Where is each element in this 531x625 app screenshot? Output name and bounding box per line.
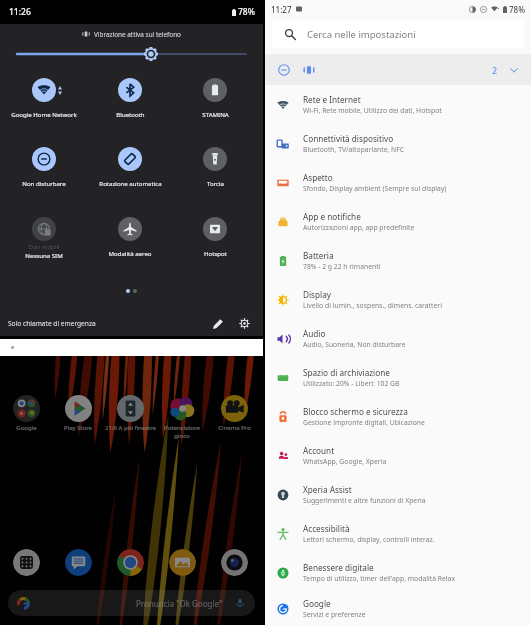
button[interactable]: Torcia: [172, 147, 258, 187]
staticText: Accessibilità: [303, 523, 350, 534]
button[interactable]: Dati mobili: [1, 217, 87, 259]
staticText: Google Home Network: [11, 110, 77, 118]
staticText: Cinema Pro: [218, 424, 251, 432]
button[interactable]: Blocco schermo e sicurezza: [265, 397, 531, 436]
staticText: Vibrazione attiva sul telefono: [94, 30, 181, 39]
button[interactable]: Messaggi: [65, 549, 92, 576]
staticText: 2: [492, 64, 498, 76]
button[interactable]: Spazio di archiviazione: [265, 358, 531, 397]
staticText: Servizi e preferenze: [303, 610, 366, 619]
button[interactable]: Cinema Pro: [208, 395, 260, 432]
button[interactable]: Impostazioni: [235, 314, 253, 332]
button[interactable]: Rete e Internet: [265, 85, 531, 124]
staticText: STAMINA: [202, 110, 229, 118]
button[interactable]: Xperia Assist: [265, 475, 531, 514]
button[interactable]: Pronuncia "Ok Google": [8, 590, 255, 616]
button[interactable]: Benessere digitale: [265, 553, 531, 592]
staticText: 11:26: [9, 6, 31, 18]
button[interactable]: Fotocamera: [221, 549, 248, 576]
staticText: App e notifiche: [303, 211, 361, 222]
staticText: Torcia: [207, 179, 224, 187]
staticText: Cerca nelle impostazioni: [307, 28, 416, 41]
button[interactable]: Galleria: [169, 549, 196, 576]
staticText: Wi-Fi, Rete mobile, Utilizzo dei dati, H…: [303, 106, 442, 115]
staticText: Display: [303, 289, 331, 300]
button[interactable]: STAMINA: [172, 78, 258, 118]
staticText: Autorizzazioni app, app predefinite: [303, 223, 415, 232]
button[interactable]: Batteria: [265, 241, 531, 280]
staticText: Xperia Assist: [303, 484, 352, 495]
button[interactable]: Chrome: [117, 549, 144, 576]
staticText: Google: [16, 424, 37, 432]
button[interactable]: Modifica: [209, 314, 227, 332]
button[interactable]: App e notifiche: [265, 202, 531, 241]
button[interactable]: Display: [265, 280, 531, 319]
staticText: Blocco schermo e sicurezza: [303, 406, 408, 417]
staticText: Tempo di utilizzo, timer dell'app, modal…: [303, 574, 455, 583]
staticText: Batteria: [303, 250, 334, 261]
button[interactable]: Modalità aereo: [87, 217, 173, 257]
button[interactable]: Google Home Network: [1, 78, 87, 118]
staticText: 78% - 2 g 22 h rimanenti: [303, 262, 381, 271]
staticText: Solo chiamate di emergenza: [8, 319, 96, 328]
staticText: Spazio di archiviazione: [303, 367, 390, 378]
staticText: 78%: [238, 6, 255, 18]
button[interactable]: Accessibilità: [265, 514, 531, 553]
staticText: Benessere digitale: [303, 562, 374, 573]
button[interactable]: Non disturbare: [1, 147, 87, 187]
staticText: Rotazione automatica: [99, 179, 162, 187]
staticText: Non disturbare: [22, 179, 66, 187]
staticText: Play Store: [64, 424, 92, 432]
staticText: Connettività dispositivo: [303, 133, 394, 144]
button[interactable]: Audio: [265, 319, 531, 358]
button[interactable]: Telefono: [13, 549, 40, 576]
staticText: Utilizzato: 20% - Liberi: 102 GB: [303, 379, 400, 388]
button[interactable]: 21:9 A più finestre: [104, 395, 156, 432]
button[interactable]: Potenziatore gioco: [156, 395, 208, 439]
staticText: Bluetooth: [116, 110, 145, 118]
staticText: Sfondo, Display ambient (Sempre sul disp…: [303, 184, 447, 193]
staticText: Lettori schermo, display, controlli inte…: [303, 535, 435, 544]
staticText: Aspetto: [303, 172, 333, 183]
staticText: Dati mobili: [28, 242, 60, 250]
staticText: Suggerimenti e altre funzioni di Xperia: [303, 496, 426, 505]
button[interactable]: Rotazione automatica: [87, 147, 173, 187]
button[interactable]: Solo chiamate di emergenza: [0, 310, 263, 336]
staticText: Pronuncia "Ok Google": [136, 598, 223, 609]
staticText: Livello di lumin., sospens., dimens. car…: [303, 301, 442, 310]
staticText: Hotspot: [204, 249, 227, 257]
button[interactable]: Cerca nelle impostazioni: [272, 20, 524, 48]
staticText: Bluetooth, TV/altoparlante, NFC: [303, 145, 405, 154]
staticText: Rete e Internet: [303, 94, 361, 105]
staticText: Audio: [303, 328, 326, 339]
staticText: Account: [303, 445, 335, 456]
button[interactable]: Bluetooth: [87, 78, 173, 118]
staticText: Gestione impronte digitali, Ubicazione: [303, 418, 425, 427]
button[interactable]: Google: [265, 592, 531, 625]
button[interactable]: Hotspot: [172, 217, 258, 257]
staticText: 78%: [509, 4, 525, 15]
staticText: Nessuna SIM: [25, 251, 63, 259]
staticText: Audio, Suoneria, Non disturbare: [303, 340, 406, 349]
button[interactable]: Play Store: [52, 395, 104, 432]
button[interactable]: Connettività dispositivo: [265, 124, 531, 163]
staticText: 21:9 A più finestre: [105, 424, 156, 432]
button[interactable]: Account: [265, 436, 531, 475]
button[interactable]: 2: [265, 54, 531, 85]
staticText: WhatsApp, Google, Xperia: [303, 457, 387, 466]
staticText: 11:27: [271, 4, 292, 15]
staticText: Modalità aereo: [108, 249, 152, 257]
staticText: Potenziatore gioco: [164, 424, 200, 439]
button[interactable]: Google: [0, 395, 52, 432]
button[interactable]: Aspetto: [265, 163, 531, 202]
staticText: Google: [303, 598, 331, 609]
